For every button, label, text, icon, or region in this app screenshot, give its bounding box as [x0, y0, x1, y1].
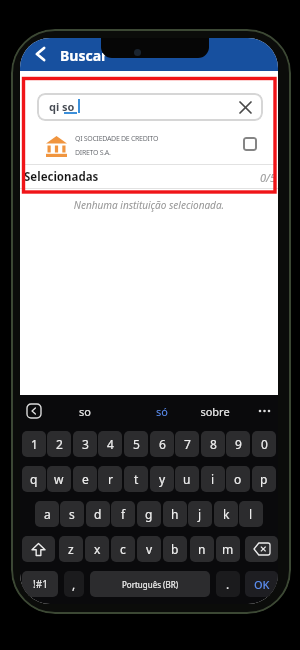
staticText: j: [198, 506, 202, 522]
staticText: t: [134, 471, 139, 487]
staticText: b: [171, 541, 179, 557]
button[interactable]: s: [60, 501, 84, 527]
button[interactable]: 0: [252, 431, 276, 457]
staticText: g: [145, 506, 153, 522]
button[interactable]: [245, 536, 278, 562]
staticText: Selecionadas: [24, 169, 99, 185]
button[interactable]: t: [124, 466, 148, 492]
staticText: a: [44, 506, 51, 522]
button[interactable]: d: [86, 501, 110, 527]
button[interactable]: h: [163, 501, 187, 527]
button[interactable]: u: [175, 466, 199, 492]
staticText: DIRETO S.A.: [75, 148, 111, 158]
button[interactable]: OK: [245, 571, 278, 597]
staticText: 3: [82, 436, 89, 452]
button[interactable]: v: [137, 536, 161, 562]
button[interactable]: a: [35, 501, 59, 527]
staticText: w: [54, 471, 64, 487]
staticText: ,: [72, 576, 76, 592]
button[interactable]: [36, 48, 45, 60]
staticText: c: [120, 541, 126, 557]
staticText: e: [82, 471, 89, 487]
button[interactable]: m: [216, 536, 240, 562]
staticText: Buscar: [60, 46, 108, 65]
button[interactable]: g: [137, 501, 161, 527]
button[interactable]: [22, 536, 55, 562]
button[interactable]: 9: [226, 431, 250, 457]
staticText: o: [234, 471, 242, 487]
button[interactable]: q: [22, 466, 46, 492]
button[interactable]: [243, 137, 257, 151]
staticText: r: [108, 471, 113, 487]
staticText: i: [211, 471, 215, 487]
button[interactable]: r: [98, 466, 122, 492]
button[interactable]: ,: [64, 571, 84, 597]
button[interactable]: qi so: [37, 93, 263, 121]
button[interactable]: 5: [124, 431, 148, 457]
button[interactable]: so: [75, 404, 95, 419]
button[interactable]: z: [59, 536, 83, 562]
button[interactable]: w: [47, 466, 71, 492]
staticText: 4: [107, 436, 114, 452]
staticText: f: [121, 506, 126, 522]
staticText: QI SOCIEDADE DE CREDITO: [75, 134, 159, 144]
button[interactable]: 2: [47, 431, 71, 457]
staticText: s: [69, 506, 75, 522]
button[interactable]: 6: [150, 431, 174, 457]
staticText: k: [223, 506, 230, 522]
button[interactable]: QI SOCIEDADE DE CREDITO: [46, 134, 278, 158]
button[interactable]: f: [111, 501, 135, 527]
button[interactable]: c: [111, 536, 135, 562]
staticText: OK: [254, 577, 270, 592]
staticText: x: [94, 541, 101, 557]
staticText: 6: [159, 436, 166, 452]
staticText: z: [68, 541, 74, 557]
button[interactable]: j: [188, 501, 212, 527]
button[interactable]: [240, 102, 251, 113]
staticText: 5: [133, 436, 140, 452]
staticText: y: [159, 471, 166, 487]
staticText: n: [198, 541, 206, 557]
button[interactable]: sobre: [200, 404, 230, 419]
staticText: l: [249, 506, 253, 522]
staticText: 0: [261, 436, 268, 452]
staticText: d: [94, 506, 102, 522]
button[interactable]: y: [150, 466, 174, 492]
button[interactable]: o: [226, 466, 250, 492]
button[interactable]: 7: [175, 431, 199, 457]
staticText: qi so: [49, 99, 75, 114]
button[interactable]: b: [163, 536, 187, 562]
button[interactable]: 1: [22, 431, 46, 457]
staticText: h: [171, 506, 179, 522]
button[interactable]: 3: [73, 431, 97, 457]
button[interactable]: [258, 404, 271, 418]
staticText: m: [222, 541, 234, 557]
button[interactable]: e: [73, 466, 97, 492]
button[interactable]: 4: [98, 431, 122, 457]
button[interactable]: x: [85, 536, 109, 562]
staticText: Nenhuma instituição selecionada.: [20, 198, 278, 212]
staticText: .: [226, 576, 230, 592]
staticText: 1: [31, 436, 38, 452]
staticText: 8: [210, 436, 217, 452]
staticText: 0/5: [260, 170, 277, 185]
button[interactable]: .: [216, 571, 240, 597]
staticText: p: [260, 471, 268, 487]
button[interactable]: p: [252, 466, 276, 492]
button[interactable]: n: [190, 536, 214, 562]
button[interactable]: !#1: [22, 571, 58, 597]
button[interactable]: 8: [201, 431, 225, 457]
staticText: Português (BR): [122, 579, 179, 590]
button[interactable]: [27, 404, 41, 418]
staticText: v: [146, 541, 153, 557]
staticText: 9: [235, 436, 242, 452]
staticText: !#1: [33, 577, 48, 591]
staticText: u: [183, 471, 191, 487]
button[interactable]: k: [214, 501, 238, 527]
button[interactable]: l: [239, 501, 263, 527]
button[interactable]: i: [201, 466, 225, 492]
staticText: 2: [56, 436, 63, 452]
button[interactable]: só: [152, 404, 172, 419]
button[interactable]: Português (BR): [90, 571, 210, 597]
staticText: 7: [184, 436, 191, 452]
